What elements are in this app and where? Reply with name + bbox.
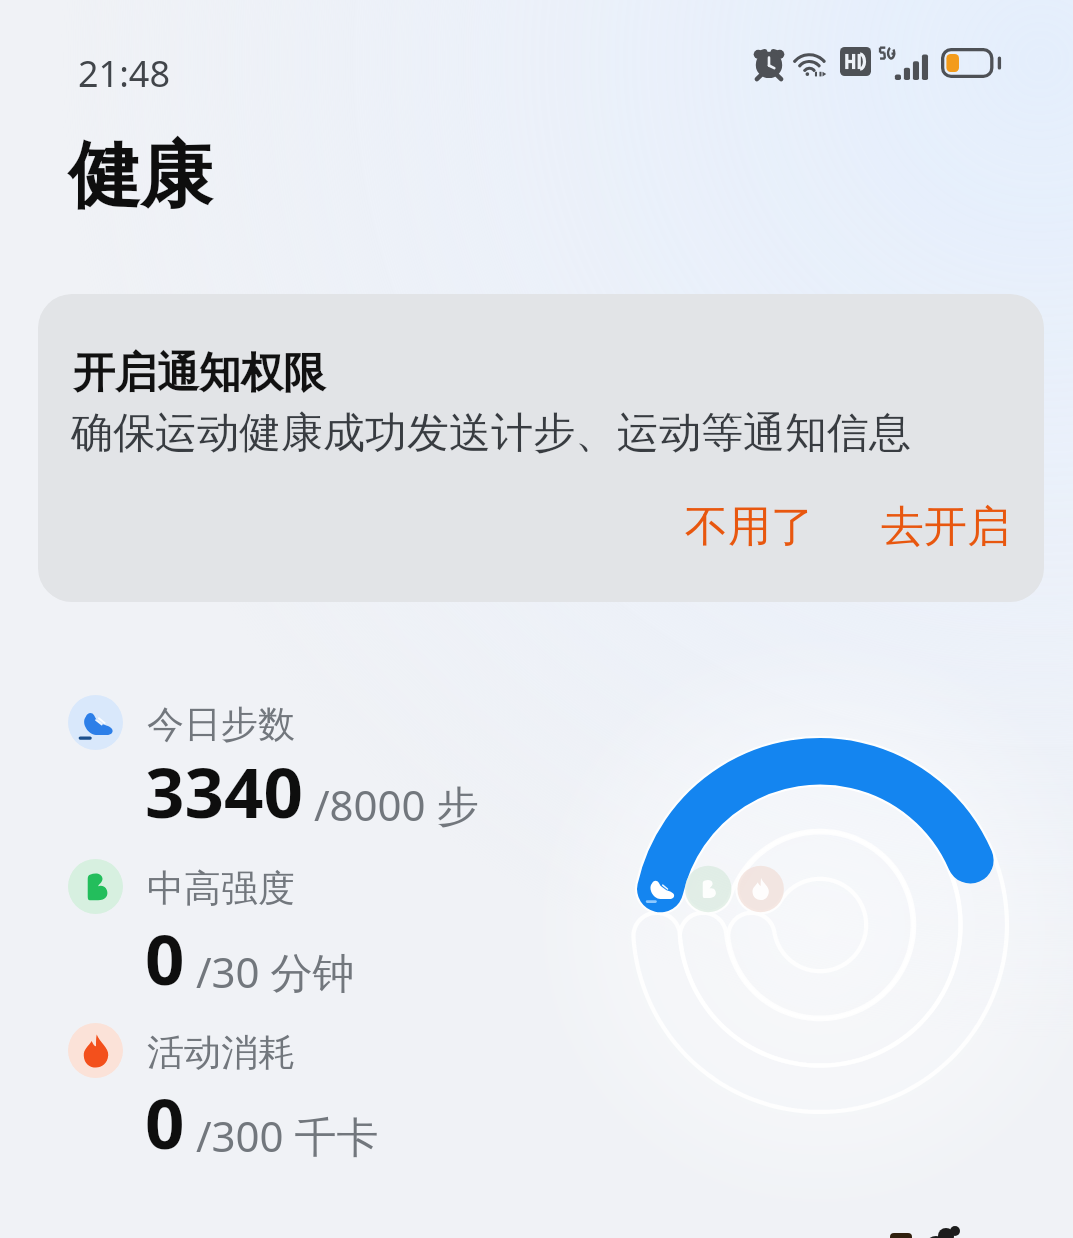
staticText: 不用了 — [685, 500, 814, 554]
button[interactable]: 中高强度 — [58, 852, 558, 984]
button[interactable]: 去开启 — [871, 490, 1020, 564]
button[interactable]: 活动圆环详情 — [600, 705, 1040, 1145]
staticText: 中高强度 — [147, 865, 295, 912]
staticText: 3340 — [145, 744, 303, 838]
button[interactable]: 活动消耗 — [58, 1016, 558, 1148]
staticText: /30 分钟 — [185, 943, 355, 1000]
staticText: /8000 步 — [303, 776, 479, 833]
staticText: 21:48 — [78, 49, 171, 98]
staticText: 0 — [145, 1075, 185, 1169]
staticText: 健康 — [68, 131, 212, 222]
staticText: 开启通知权限 — [73, 347, 325, 400]
staticText: 去开启 — [881, 500, 1010, 554]
button[interactable]: 开启通知权限 — [38, 294, 1044, 602]
staticText: 活动消耗 — [147, 1029, 295, 1076]
staticText: 今日步数 — [147, 701, 295, 748]
button[interactable]: 不用了 — [675, 490, 824, 564]
staticText: 0 — [145, 911, 185, 1005]
staticText: 确保运动健康成功发送计步、运动等通知信息 — [71, 407, 911, 460]
staticText: /300 千卡 — [185, 1107, 379, 1164]
button[interactable]: 今日步数 — [58, 688, 558, 820]
